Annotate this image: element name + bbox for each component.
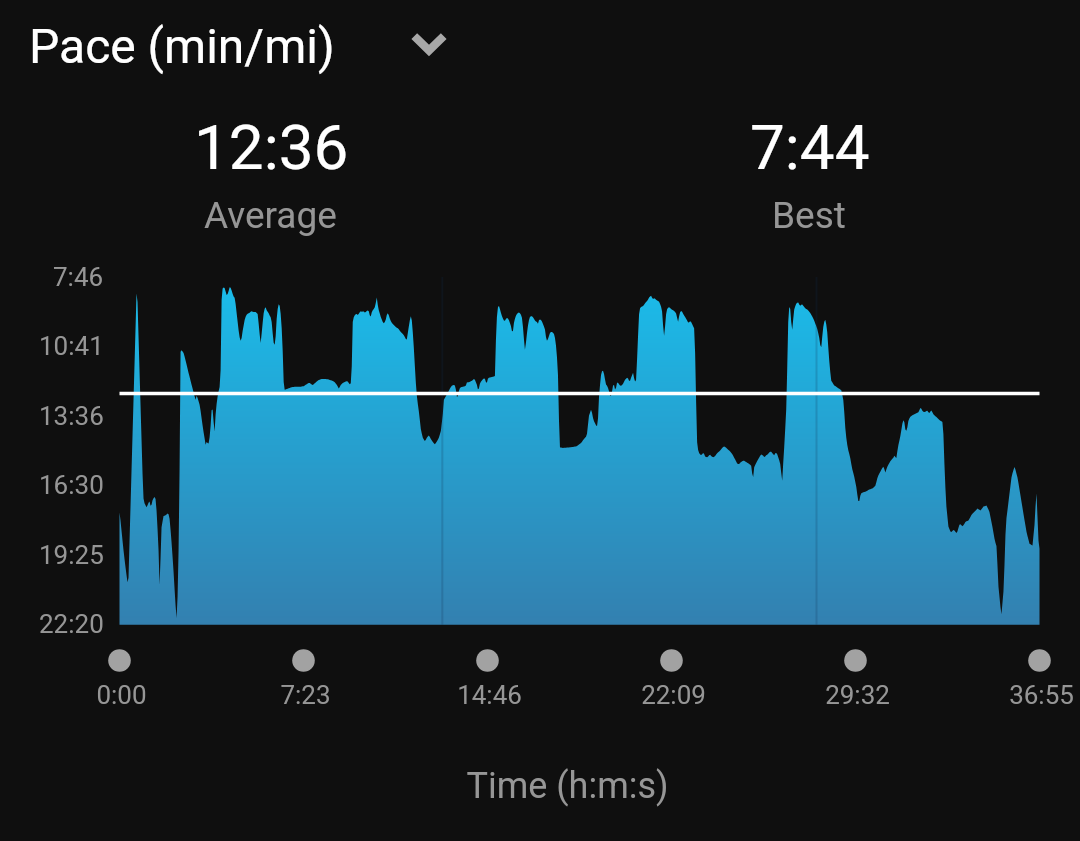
staticText: 29:32 [825, 680, 890, 710]
staticText: 14:46 [457, 680, 522, 710]
staticText: 7:23 [280, 680, 331, 710]
staticText: Average [204, 194, 337, 236]
staticText: 22:20 [39, 609, 104, 639]
staticText: 12:36 [194, 111, 349, 173]
staticText: 0:00 [96, 680, 147, 710]
staticText: 13:36 [39, 401, 104, 431]
staticText: 36:55 [1009, 680, 1074, 710]
staticText: Best [772, 194, 846, 236]
button[interactable]: Pace (min/mi) [16, 3, 455, 89]
staticText: 10:41 [39, 331, 104, 361]
staticText: 7:44 [750, 111, 870, 173]
staticText: 22:09 [641, 680, 706, 710]
staticText: Pace (min/mi) [29, 18, 335, 74]
other: Pace chart [0, 0, 1080, 841]
button[interactable]: 12:36 [0, 100, 540, 248]
staticText: 7:46 [53, 262, 104, 292]
other: Change metric [403, 20, 455, 72]
staticText: 19:25 [39, 540, 104, 570]
button[interactable]: 7:44 [540, 100, 1080, 248]
staticText: 16:30 [39, 470, 104, 500]
staticText: Time (h:m:s) [466, 765, 669, 807]
